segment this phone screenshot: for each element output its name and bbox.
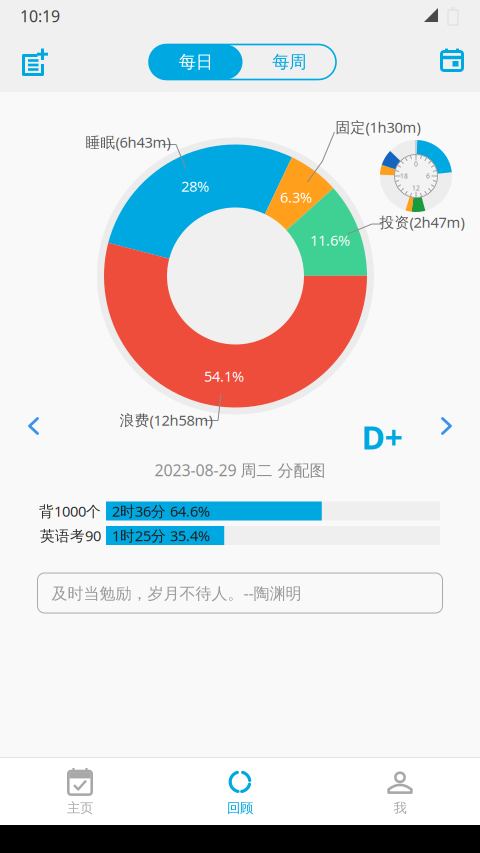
staticText: 12 <box>412 184 420 192</box>
button[interactable]: 我 <box>320 758 480 825</box>
staticText: 2时36分 64.6% <box>112 501 210 521</box>
staticText: 10:19 <box>20 5 60 27</box>
staticText: 11.6% <box>310 230 350 250</box>
staticText: 英语考90 <box>40 526 101 545</box>
staticText: 每周 <box>272 51 306 73</box>
staticText: 背1000个 <box>39 501 101 521</box>
staticText: 54.1% <box>204 366 244 386</box>
staticText: 回顾 <box>227 800 253 816</box>
button[interactable]: Next day <box>423 400 469 451</box>
staticText: 每日 <box>179 51 213 73</box>
staticText: D+ <box>361 416 402 458</box>
button[interactable]: Calendar <box>428 36 476 88</box>
staticText: 1时25分 35.4% <box>112 526 210 545</box>
button[interactable]: 每周 <box>242 44 336 79</box>
staticText: 及时当勉励，岁月不待人。--陶渊明 <box>51 582 301 604</box>
staticText: 6.3% <box>280 187 312 207</box>
staticText: 0 <box>414 160 418 168</box>
button[interactable]: 每日 <box>149 44 242 79</box>
staticText: 18 <box>400 172 408 180</box>
staticText: 浪费(12h58m) <box>119 410 212 430</box>
staticText: 28% <box>181 176 209 196</box>
button[interactable]: 主页 <box>0 758 160 825</box>
button[interactable]: New record <box>9 36 57 88</box>
staticText: 投资(2h47m) <box>379 212 464 232</box>
button[interactable]: 回顾 <box>160 758 320 825</box>
staticText: 我 <box>393 800 406 816</box>
staticText: 固定(1h30m) <box>335 117 420 137</box>
staticText: 6 <box>426 172 430 180</box>
button[interactable]: Previous day <box>10 400 56 451</box>
staticText: 2023-08-29 周二 分配图 <box>154 459 325 481</box>
staticText: 睡眠(6h43m) <box>85 132 170 152</box>
staticText: 主页 <box>67 800 93 816</box>
